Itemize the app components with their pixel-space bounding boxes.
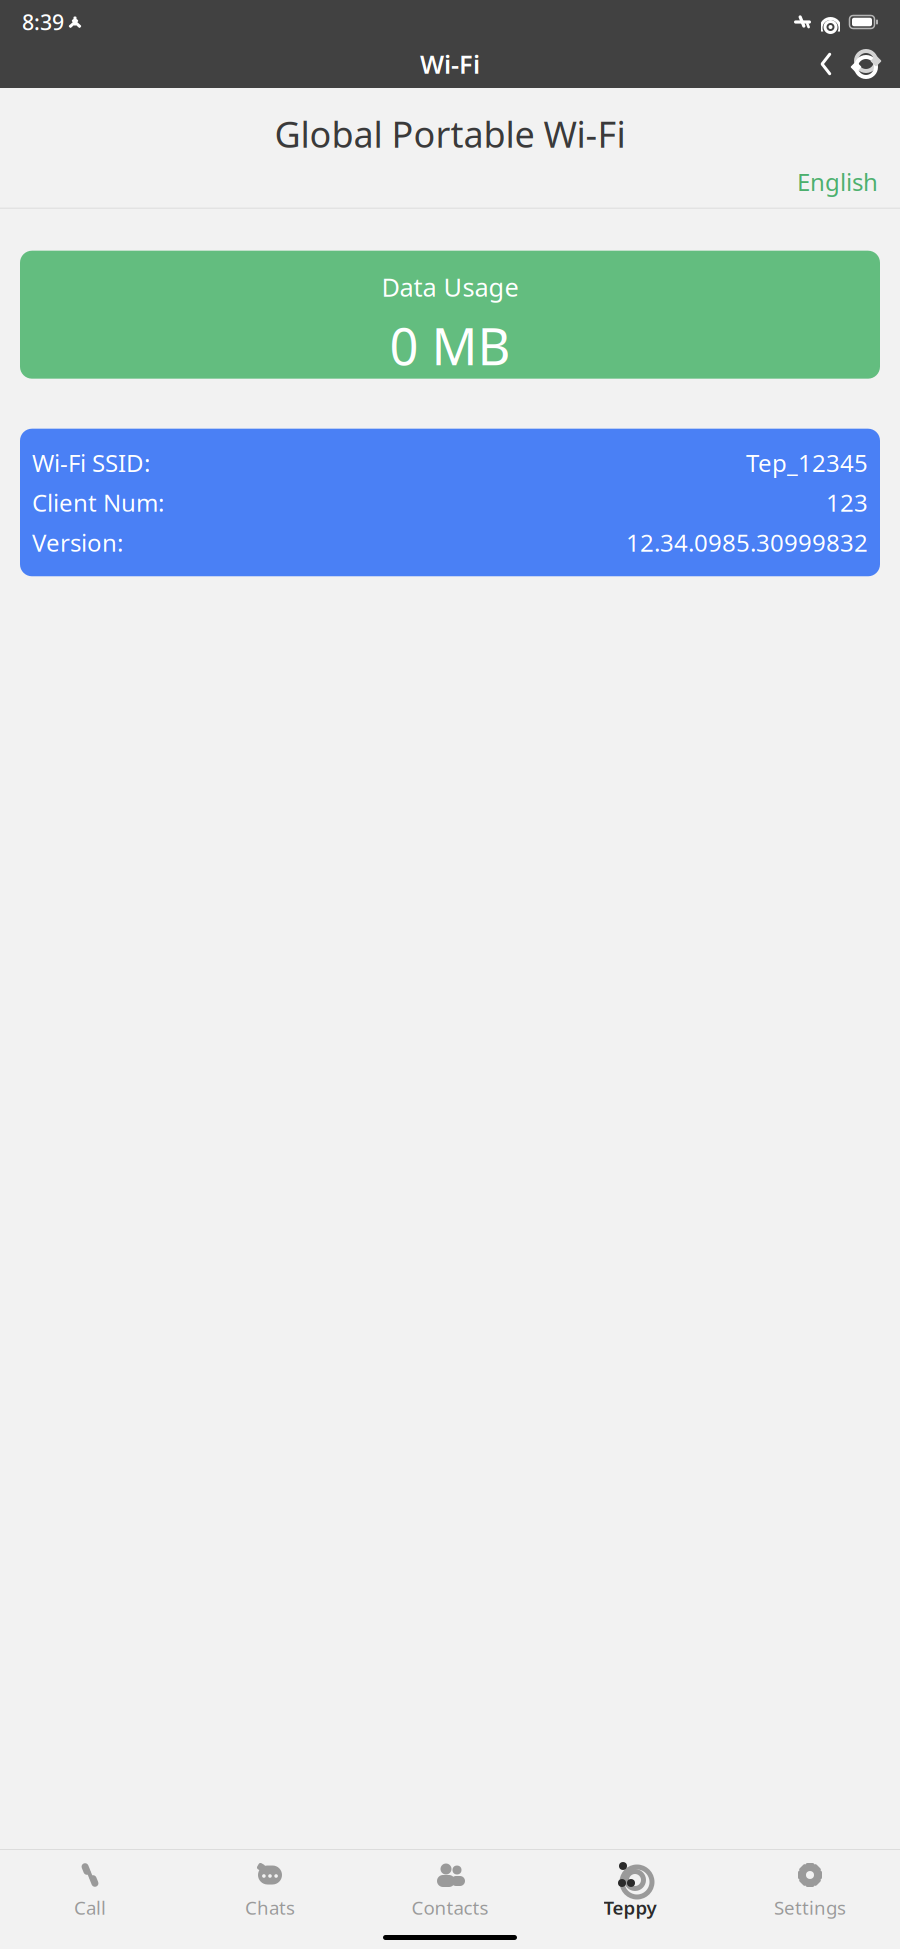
staticText: Chats: [245, 1895, 295, 1920]
button[interactable]: English: [791, 164, 884, 200]
staticText: 8:39: [22, 8, 64, 36]
staticText: Global Portable Wi-Fi: [274, 110, 625, 158]
staticText: Teppy: [603, 1895, 656, 1920]
staticText: 0 MB: [389, 312, 510, 379]
staticText: Client Num:: [32, 487, 164, 518]
staticText: Contacts: [411, 1895, 488, 1920]
staticText: Wi-Fi: [420, 47, 480, 81]
button[interactable]: Refresh: [846, 44, 886, 84]
button[interactable]: Settings: [720, 1858, 900, 1922]
staticText: Version:: [32, 526, 123, 558]
staticText: Call: [74, 1895, 106, 1920]
button[interactable]: Teppy: [540, 1858, 720, 1922]
staticText: 12.34.0985.30999832: [626, 526, 868, 558]
button[interactable]: Chats: [180, 1858, 360, 1922]
button[interactable]: Contacts: [360, 1858, 540, 1922]
button[interactable]: Call: [0, 1858, 180, 1922]
staticText: English: [797, 166, 878, 198]
staticText: Wi-Fi SSID:: [32, 447, 150, 479]
button[interactable]: Back: [806, 44, 846, 84]
staticText: 123: [826, 487, 868, 518]
staticText: Tep_12345: [746, 447, 868, 479]
staticText: Data Usage: [381, 270, 518, 304]
button[interactable]: Data Usage: [20, 251, 880, 379]
staticText: Settings: [774, 1895, 846, 1920]
